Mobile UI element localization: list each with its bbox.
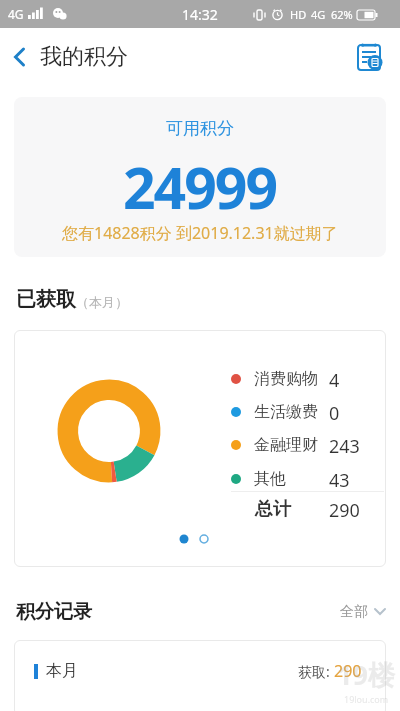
staticText: 4G <box>311 7 326 22</box>
staticText: 24999 <box>123 148 277 226</box>
staticText: 43 <box>329 468 350 490</box>
staticText: 消费购物 <box>254 369 318 389</box>
staticText: 总计 <box>255 498 291 521</box>
staticText: 62% <box>331 7 353 22</box>
staticText: HD <box>290 7 307 22</box>
staticText: 全部 <box>340 603 368 621</box>
button[interactable]: 本月 <box>14 640 386 711</box>
staticText: 19楼 <box>337 656 395 693</box>
staticText: 生活缴费 <box>254 402 318 422</box>
staticText: 290 <box>334 660 362 682</box>
staticText: 本月 <box>46 661 78 681</box>
staticText: 4 <box>329 368 340 390</box>
button[interactable]: 可用积分 <box>14 97 386 257</box>
staticText: 243 <box>329 434 360 456</box>
staticText: 获取: <box>298 662 334 681</box>
staticText: 您有14828积分 到2019.12.31就过期了 <box>62 222 338 244</box>
staticText: 积分记录 <box>16 600 92 624</box>
staticText: 290 <box>329 498 360 523</box>
staticText: 金融理财 <box>254 435 318 455</box>
button[interactable]: 积分记录 <box>0 598 400 625</box>
staticText: 其他 <box>254 469 286 489</box>
staticText: 可用积分 <box>166 118 234 139</box>
button[interactable] <box>340 28 400 86</box>
button[interactable] <box>0 28 40 86</box>
staticText: 我的积分 <box>40 43 128 71</box>
staticText: （本月） <box>76 294 128 310</box>
staticText: 4G <box>8 6 24 22</box>
staticText: 0 <box>329 401 340 423</box>
staticText: 19lou.com <box>344 693 389 705</box>
staticText: 已获取 <box>16 287 76 312</box>
staticText: 14:32 <box>182 5 218 24</box>
